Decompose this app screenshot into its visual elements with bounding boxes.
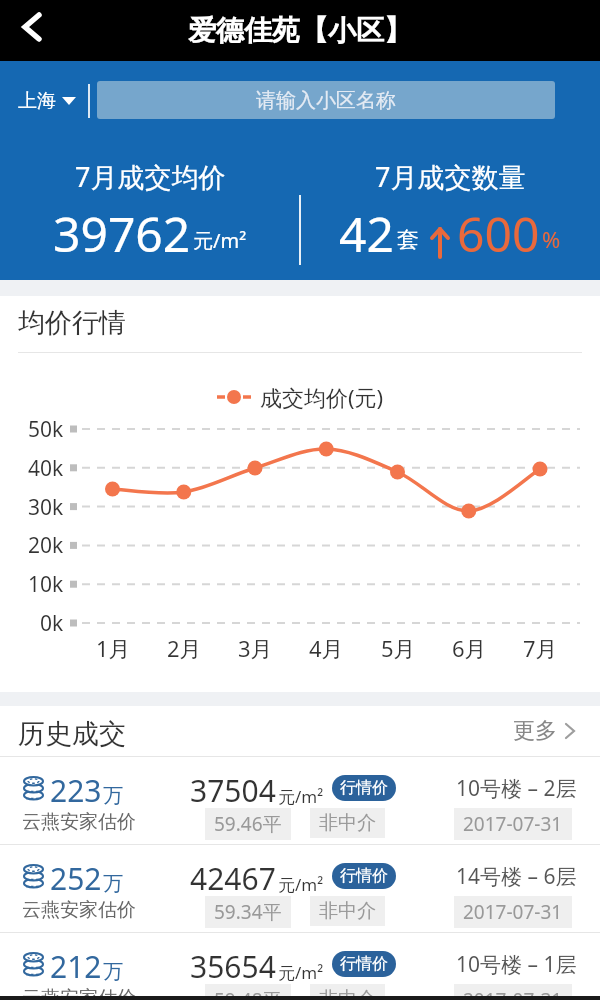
staticText: 10号楼 – 2层 [456,774,577,803]
staticText: 212 [50,946,102,987]
staticText: 元/m² [278,873,324,896]
staticText: 7月 [523,633,558,663]
button[interactable]: 请输入小区名称 [97,81,555,119]
staticText: 20k [28,531,64,559]
staticText: 50k [28,415,64,443]
staticText: 均价行情 [18,306,126,340]
staticText: 3月 [238,633,273,663]
staticText: 2月 [167,633,202,663]
staticText: 39762 [53,201,191,261]
staticText: 10号楼 – 1层 [456,950,577,979]
staticText: 爱德佳苑【小区】 [188,13,412,48]
staticText: 套 [397,226,419,254]
staticText: 云燕安家估价 [22,810,136,834]
staticText: 30k [28,493,64,521]
staticText: 万 [103,959,123,984]
staticText: 59.48平 [214,987,282,1000]
staticText: 行情价 [340,778,388,798]
staticText: 万 [103,871,123,896]
staticText: 7月成交数量 [375,158,526,195]
staticText: 40k [28,454,64,482]
button[interactable] [0,0,60,61]
staticText: 14号楼 – 6层 [456,862,577,891]
staticText: 35654 [190,946,276,987]
staticText: 1月 [96,633,131,663]
staticText: 7月成交均价 [75,158,226,195]
staticText: 10k [28,570,64,598]
staticText: 2017-07-31 [463,899,563,925]
button[interactable]: 212 [0,933,600,1000]
staticText: % [542,224,561,254]
staticText: 59.46平 [214,811,282,837]
staticText: 云燕安家估价 [22,898,136,922]
staticText: 4月 [309,633,344,663]
staticText: 37504 [190,770,276,811]
staticText: 历史成交 [18,717,126,751]
staticText: 223 [50,770,102,811]
button[interactable]: 252 [0,845,600,932]
staticText: 59.34平 [214,899,282,925]
staticText: 非中介 [319,811,376,835]
staticText: 元/m² [278,785,324,808]
staticText: 上海 [18,89,56,113]
staticText: 行情价 [340,954,388,974]
staticText: 非中介 [319,987,376,1000]
button[interactable]: 223 [0,757,600,844]
staticText: 2017-07-31 [463,811,563,837]
staticText: 成交均价(元) [260,382,384,412]
staticText: 非中介 [319,899,376,923]
staticText: 元/m² [278,961,324,984]
staticText: 行情价 [340,866,388,886]
staticText: 6月 [452,633,487,663]
staticText: 元/m² [193,227,247,254]
button[interactable]: 上海 [18,83,76,119]
staticText: 请输入小区名称 [256,88,396,113]
staticText: 42 [339,201,394,261]
staticText: 云燕安家估价 [22,986,136,1000]
staticText: 更多 [513,717,557,745]
staticText: 0k [40,609,64,637]
staticText: 600 [457,201,540,261]
staticText: 万 [103,783,123,808]
staticText: 5月 [381,633,416,663]
staticText: 42467 [190,858,276,899]
staticText: 252 [50,858,102,899]
button[interactable]: 更多 [513,717,576,745]
staticText: 2017-07-31 [463,987,563,1000]
